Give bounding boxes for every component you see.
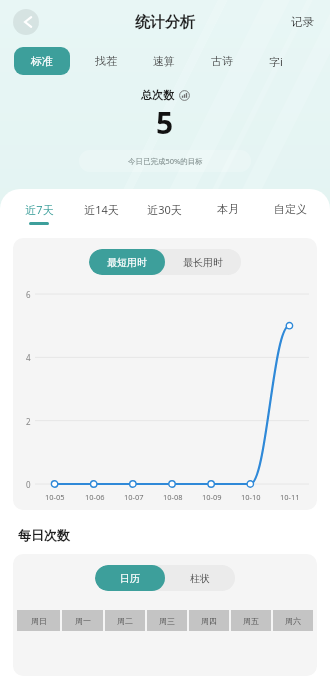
staticText: 记录	[291, 15, 314, 29]
staticText: 自定义	[274, 202, 307, 216]
staticText: 2	[26, 416, 31, 426]
button[interactable]: 最长用时	[165, 249, 241, 275]
button[interactable]: 日历	[95, 565, 165, 591]
button[interactable]: 找茬	[92, 48, 120, 74]
staticText: 0	[26, 479, 31, 489]
button[interactable]: 记录	[285, 11, 320, 33]
button[interactable]: 本月	[196, 202, 259, 224]
staticText: 周四	[201, 616, 217, 626]
staticText: 周三	[159, 616, 175, 626]
staticText: 周五	[243, 616, 259, 626]
button[interactable]: 近14天	[70, 202, 133, 225]
staticText: 古诗	[211, 54, 233, 68]
staticText: 10-08	[163, 492, 183, 502]
button[interactable]: 最短用时	[89, 249, 165, 275]
staticText: 总次数	[141, 88, 174, 102]
staticText: 10-06	[85, 492, 105, 502]
staticText: 4	[26, 352, 31, 362]
button[interactable]: 速算	[150, 48, 178, 74]
staticText: 6	[26, 289, 31, 299]
staticText: 每日次数	[18, 527, 70, 543]
staticText: 日历	[120, 572, 140, 585]
staticText: 周日	[31, 616, 47, 626]
staticText: 5	[156, 102, 174, 143]
button[interactable]: 字i	[266, 48, 286, 75]
staticText: 周一	[75, 616, 91, 626]
button[interactable]: 柱状	[165, 565, 235, 591]
staticText: 10-09	[202, 492, 222, 502]
button[interactable]: 近7天	[8, 202, 70, 225]
staticText: 统计分析	[135, 13, 195, 32]
staticText: 找茬	[95, 54, 117, 68]
staticText: 标准	[31, 54, 53, 68]
staticText: 周六	[285, 616, 301, 626]
staticText: 10-11	[280, 492, 300, 502]
button[interactable]: 今日已完成50%的目标	[79, 150, 251, 172]
button[interactable]: Back	[13, 9, 39, 35]
staticText: 近14天	[84, 202, 119, 217]
staticText: 字i	[269, 54, 283, 69]
staticText: 本月	[217, 202, 239, 216]
staticText: 周二	[117, 616, 133, 626]
staticText: 最短用时	[107, 256, 147, 269]
staticText: 10-07	[124, 492, 144, 502]
staticText: 柱状	[190, 572, 210, 585]
staticText: 10-05	[45, 492, 65, 502]
staticText: 近7天	[25, 202, 54, 217]
button[interactable]: 古诗	[208, 48, 236, 74]
staticText: 10-10	[241, 492, 261, 502]
button[interactable]: 近30天	[133, 202, 196, 225]
staticText: 最长用时	[183, 256, 223, 269]
staticText: 今日已完成50%的目标	[128, 156, 203, 166]
staticText: 速算	[153, 54, 175, 68]
button[interactable]: 自定义	[259, 202, 322, 224]
staticText: 近30天	[147, 202, 182, 217]
button[interactable]: 标准	[14, 47, 70, 75]
